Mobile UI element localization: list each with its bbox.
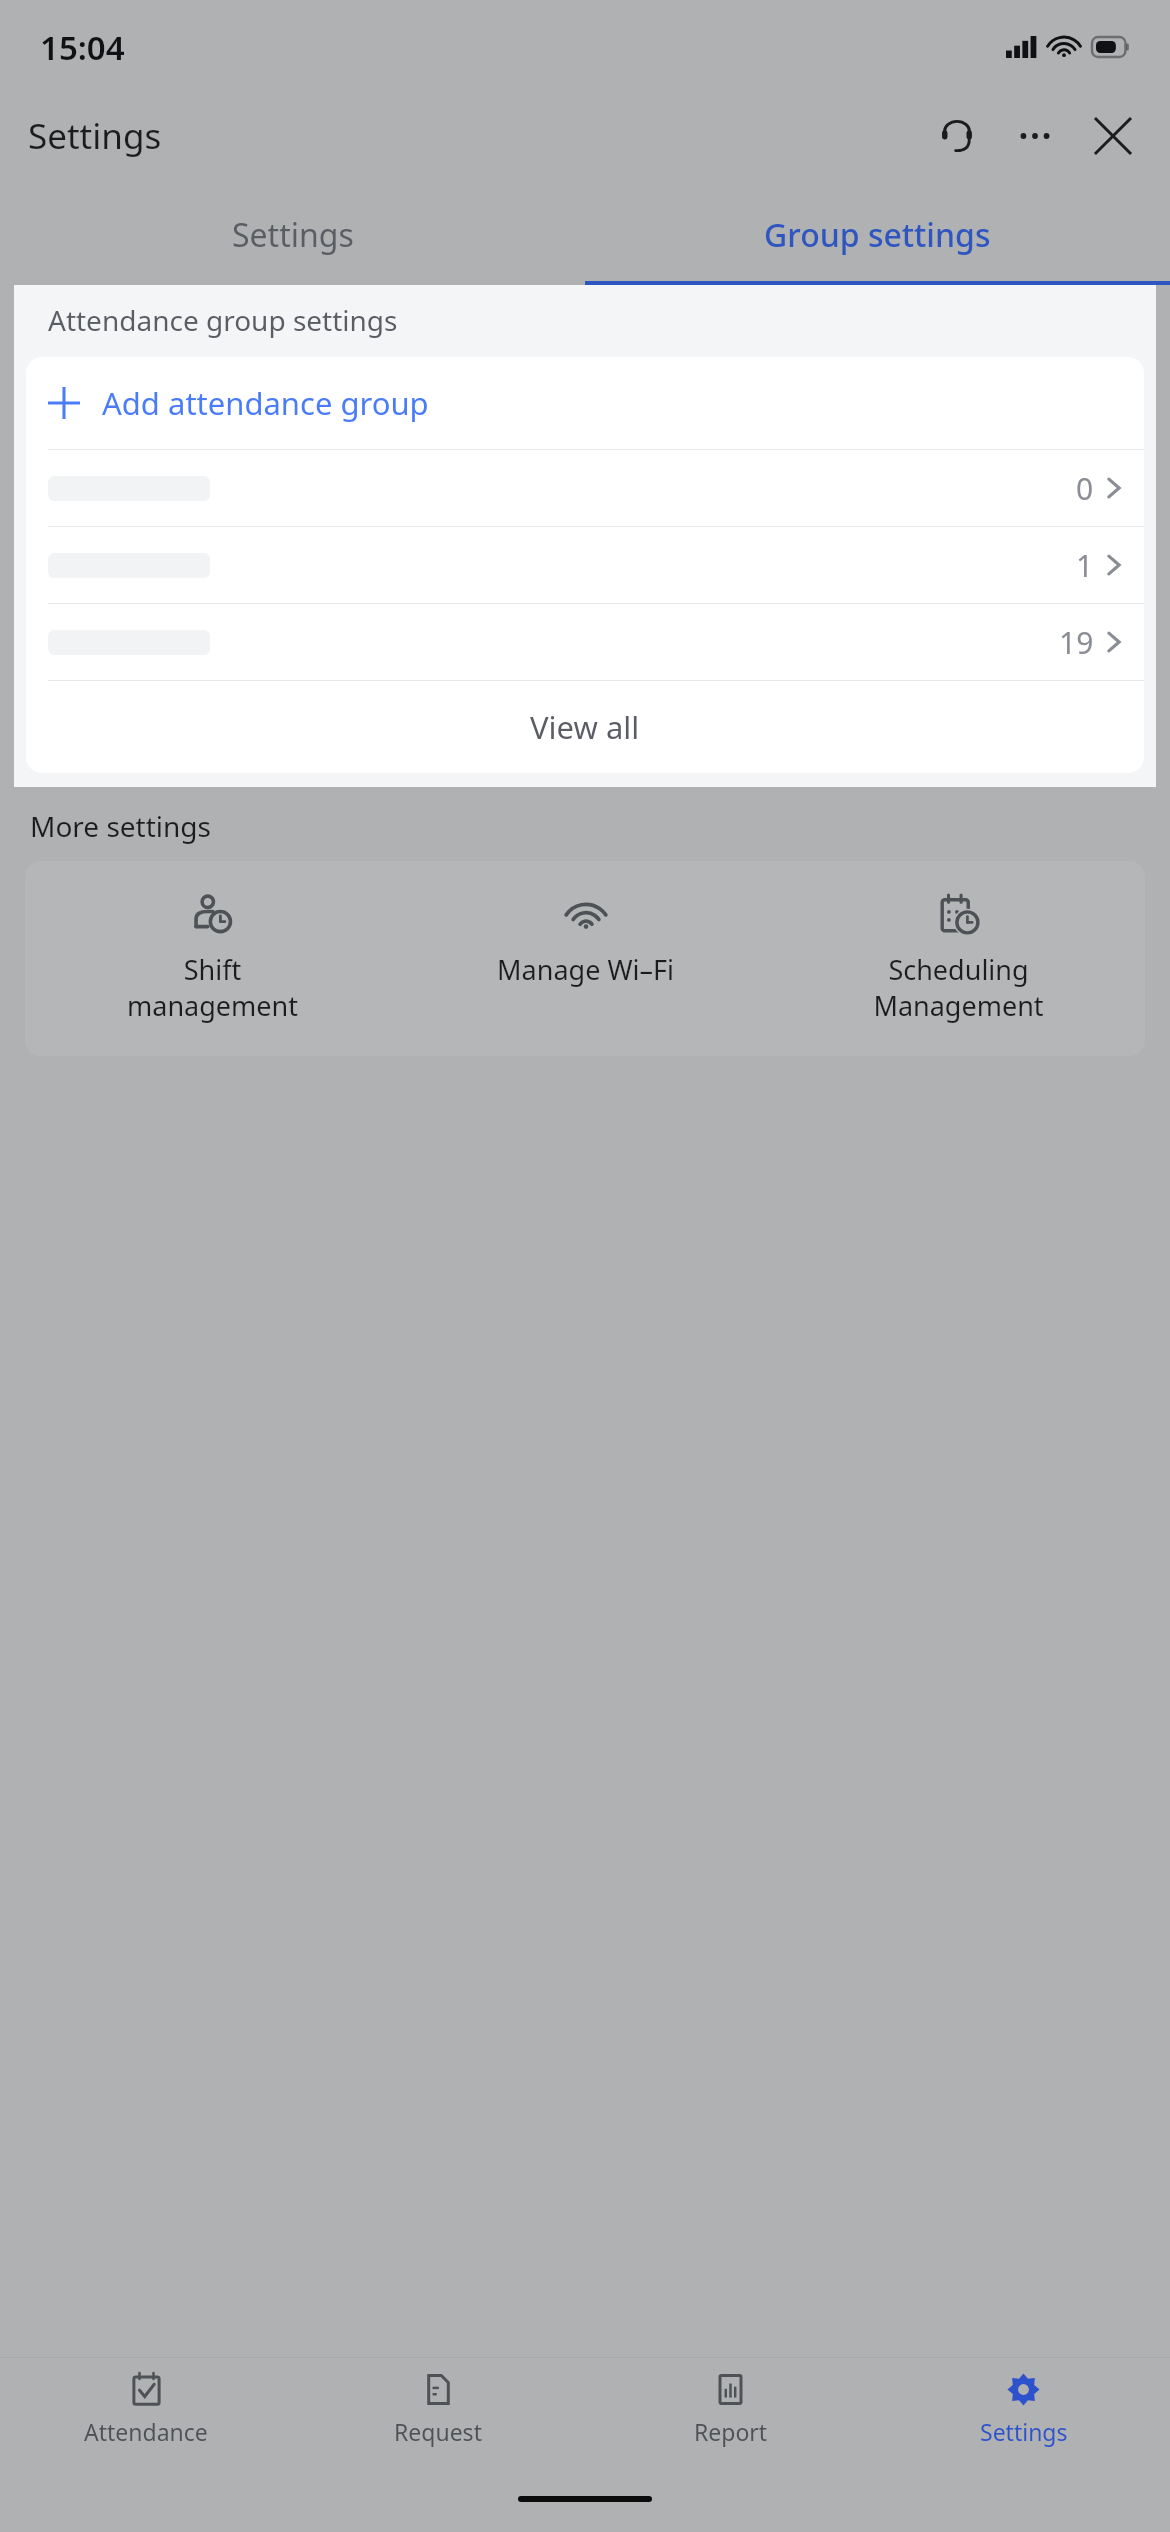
staticText: 15:04 bbox=[40, 25, 125, 70]
staticText: More settings bbox=[30, 807, 211, 845]
button[interactable]: View all bbox=[26, 681, 1144, 773]
button[interactable]: Report bbox=[584, 2372, 877, 2476]
button[interactable]: Group settings bbox=[585, 184, 1170, 285]
button[interactable]: Shift management bbox=[25, 887, 399, 1030]
staticText: Attendance bbox=[84, 2416, 208, 2447]
staticText: 1 bbox=[1076, 545, 1094, 586]
staticText: Attendance group settings bbox=[48, 301, 398, 339]
button[interactable]: Request bbox=[292, 2372, 584, 2476]
button[interactable]: Customer support bbox=[928, 107, 986, 165]
button[interactable]: 1 bbox=[26, 527, 1144, 603]
staticText: Scheduling Management bbox=[873, 951, 1044, 1024]
button[interactable]: 19 bbox=[26, 604, 1144, 680]
staticText: Group settings bbox=[764, 213, 991, 257]
button[interactable]: More options bbox=[1006, 107, 1064, 165]
staticText: Settings bbox=[28, 112, 162, 160]
staticText: 0 bbox=[1076, 468, 1094, 509]
staticText: Settings bbox=[980, 2416, 1068, 2447]
button[interactable]: Settings bbox=[0, 184, 585, 285]
staticText: View all bbox=[530, 706, 640, 748]
button[interactable]: Add attendance group bbox=[26, 357, 1144, 449]
staticText: Shift management bbox=[127, 951, 298, 1024]
button[interactable]: Scheduling Management bbox=[772, 887, 1145, 1030]
staticText: Request bbox=[394, 2416, 482, 2447]
staticText: Settings bbox=[232, 213, 354, 257]
button[interactable]: Manage Wi–Fi bbox=[399, 887, 772, 994]
button[interactable]: 0 bbox=[26, 450, 1144, 526]
button[interactable]: Close bbox=[1084, 107, 1142, 165]
button[interactable]: Settings bbox=[877, 2372, 1170, 2476]
staticText: Manage Wi–Fi bbox=[497, 951, 674, 988]
staticText: 19 bbox=[1059, 622, 1094, 663]
staticText: Add attendance group bbox=[102, 382, 429, 424]
button[interactable]: Attendance bbox=[0, 2372, 292, 2476]
staticText: Report bbox=[694, 2416, 768, 2447]
